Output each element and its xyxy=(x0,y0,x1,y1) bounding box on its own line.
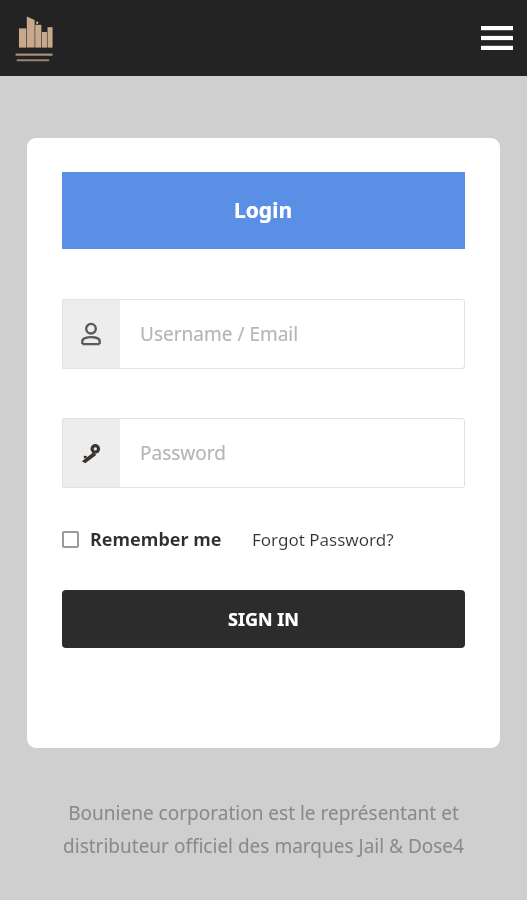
staticText: SIGN IN xyxy=(228,607,299,632)
button[interactable]: SIGN IN xyxy=(62,590,465,648)
button[interactable]: Password xyxy=(62,418,465,488)
staticText: Bouniene corporation est le représentant… xyxy=(20,800,507,858)
button[interactable]: Bouniene corporation home xyxy=(10,8,66,68)
button[interactable]: Username / Email xyxy=(62,299,465,369)
staticText: Password xyxy=(140,440,226,466)
button[interactable]: Remember me xyxy=(62,527,222,552)
button[interactable]: Login xyxy=(62,172,465,249)
staticText: Login xyxy=(234,196,293,225)
staticText: Username / Email xyxy=(140,321,299,347)
staticText: Forgot Password? xyxy=(252,528,394,551)
staticText: Remember me xyxy=(90,527,222,552)
button[interactable]: Open navigation menu xyxy=(475,16,519,60)
button[interactable]: Forgot Password? xyxy=(252,528,394,551)
